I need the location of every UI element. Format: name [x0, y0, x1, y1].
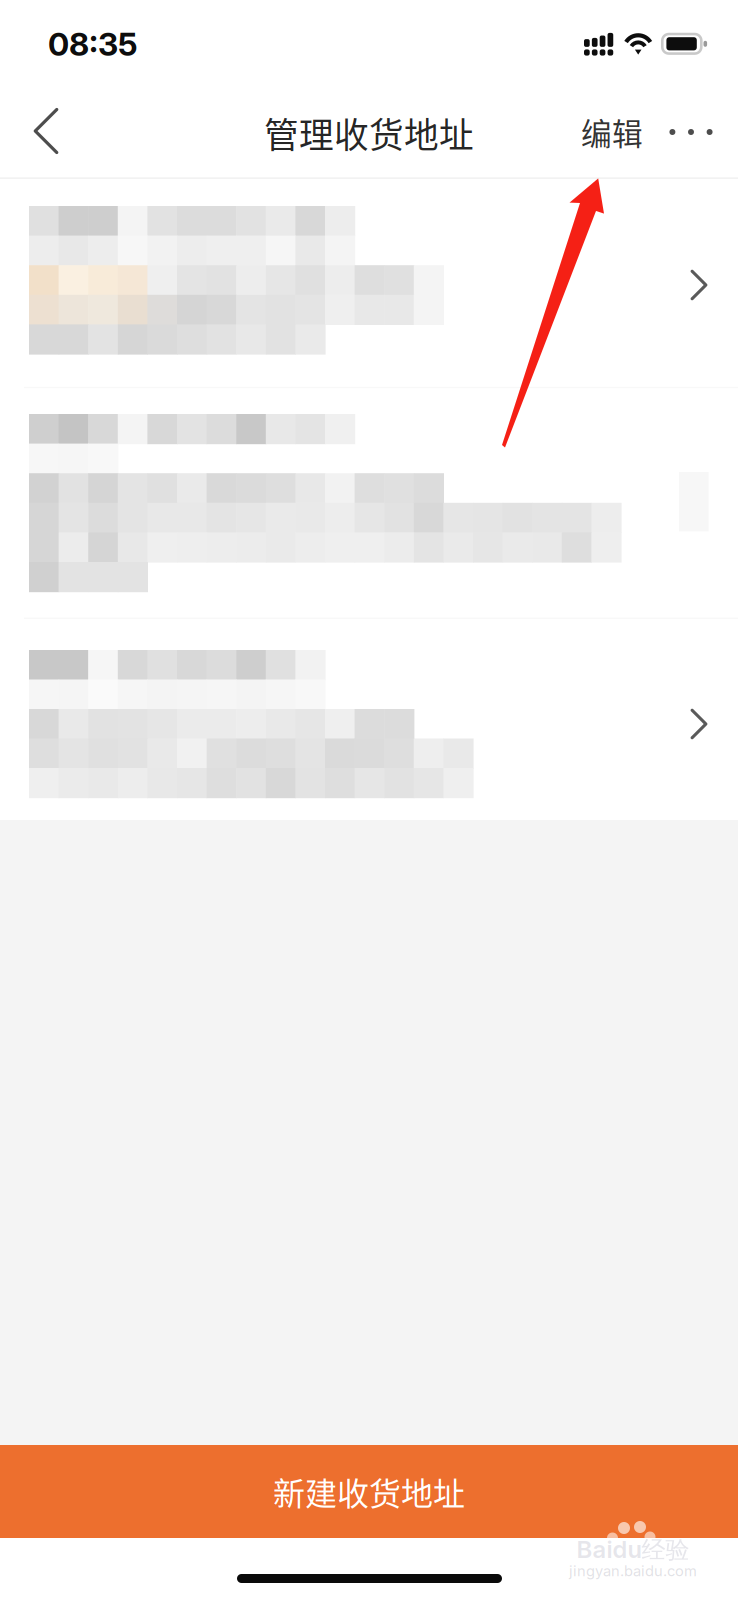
staticText: 管理收货地址: [264, 108, 474, 158]
staticText: 新建收货地址: [273, 1468, 465, 1515]
button[interactable]: More: [656, 102, 726, 162]
staticText: jingyan.baidu.com: [569, 1562, 697, 1580]
button[interactable]: Back: [3, 87, 89, 175]
staticText: Baidu经验: [576, 1535, 689, 1565]
button[interactable]: 编辑: [557, 97, 667, 167]
staticText: 08:35: [48, 25, 138, 63]
staticText: 编辑: [581, 110, 643, 154]
button[interactable]: 新建收货地址: [0, 1445, 738, 1538]
